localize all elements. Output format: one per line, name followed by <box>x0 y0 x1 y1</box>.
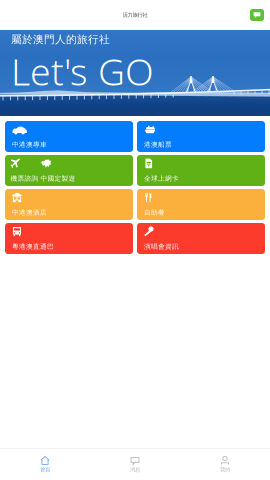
staticText: 全球上網卡 <box>144 174 179 183</box>
button[interactable]: 消息 <box>90 449 180 480</box>
button[interactable]: Messages <box>250 9 264 21</box>
button[interactable]: 自助餐 <box>137 189 265 220</box>
staticText: 機票諮詢 <box>10 174 38 183</box>
button[interactable]: 機票諮詢 <box>5 155 40 186</box>
staticText: 我的 <box>220 466 230 473</box>
staticText: 首頁 <box>40 466 50 473</box>
button[interactable]: 中港澳專車 <box>5 121 133 152</box>
button[interactable]: 港澳船票 <box>137 121 265 152</box>
staticText: 演唱會資訊 <box>144 242 179 251</box>
staticText: 活力旅行社 <box>122 12 147 18</box>
staticText: 消息 <box>130 466 140 473</box>
staticText: Let's GO <box>11 46 154 96</box>
staticText: 港澳船票 <box>144 140 172 149</box>
button[interactable]: 我的 <box>180 449 270 480</box>
button[interactable]: 全球上網卡 <box>137 155 265 186</box>
button[interactable]: 中國定製遊 <box>40 155 76 186</box>
staticText: 中港澳酒店 <box>12 208 47 217</box>
button[interactable]: 演唱會資訊 <box>137 223 265 254</box>
button[interactable]: 粵港澳直通巴 <box>5 223 133 254</box>
staticText: 中港澳專車 <box>12 140 47 149</box>
button[interactable]: 中港澳酒店 <box>5 189 133 220</box>
staticText: 中國定製遊 <box>40 174 75 183</box>
staticText: 粵港澳直通巴 <box>12 242 54 251</box>
staticText: 自助餐 <box>144 208 165 217</box>
button[interactable]: 首頁 <box>0 449 90 480</box>
staticText: 屬於澳門人的旅行社 <box>11 33 110 46</box>
